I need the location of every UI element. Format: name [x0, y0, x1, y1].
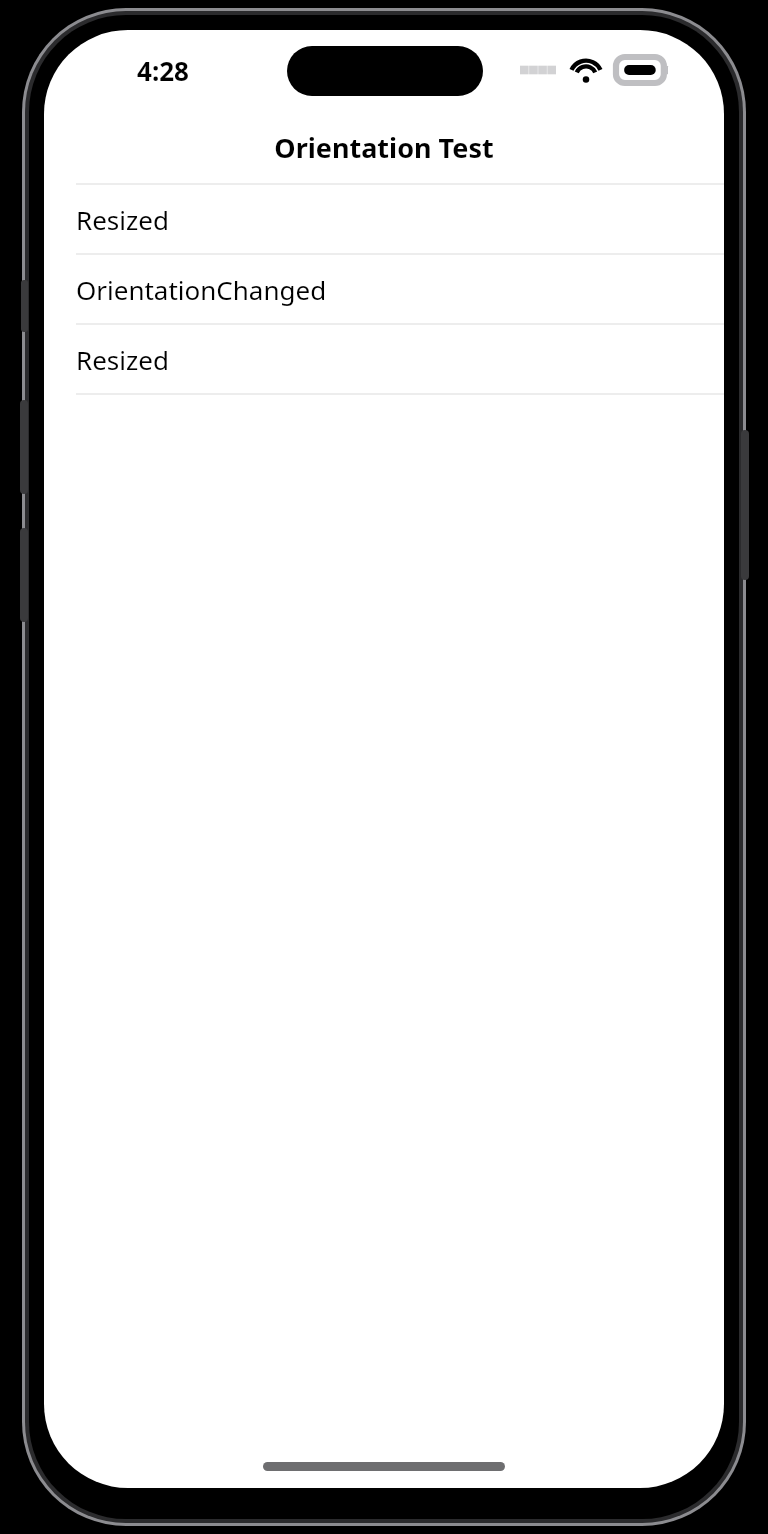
- staticText: OrientationChanged: [76, 272, 327, 307]
- staticText: Resized: [76, 342, 169, 377]
- button[interactable]: OrientationChanged: [44, 255, 724, 323]
- other: Volume up: [20, 400, 28, 494]
- staticText: 4:28: [137, 53, 189, 88]
- other: Silent switch: [21, 280, 28, 332]
- other: Power: [741, 430, 749, 580]
- button[interactable]: Resized: [44, 325, 724, 393]
- button[interactable]: Resized: [44, 185, 724, 253]
- staticText: Orientation Test: [274, 129, 494, 166]
- other: Volume down: [20, 528, 28, 622]
- staticText: Resized: [76, 202, 169, 237]
